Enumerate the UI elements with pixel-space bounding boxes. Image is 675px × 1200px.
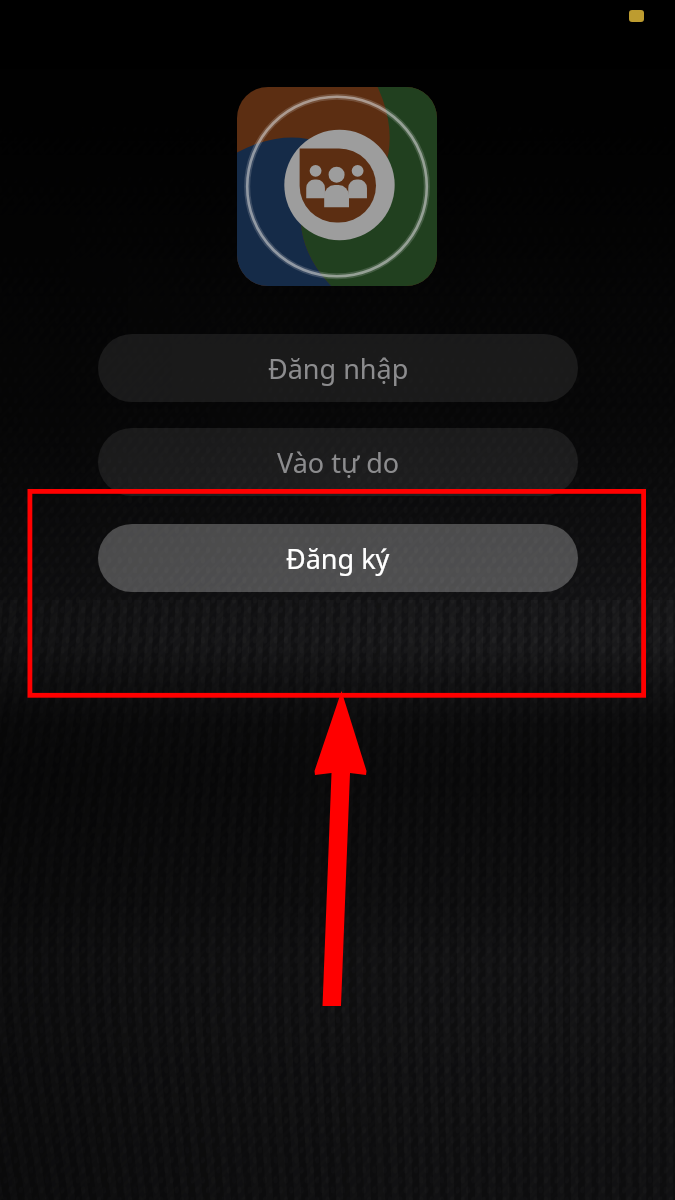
staticText: Vào tự do: [277, 444, 400, 481]
staticText: Đăng nhập: [268, 350, 409, 387]
button[interactable]: Đăng ký: [98, 524, 578, 592]
staticText: Đăng ký: [286, 540, 390, 577]
button[interactable]: Vào tự do: [98, 428, 578, 496]
button[interactable]: Đăng nhập: [98, 334, 578, 402]
other: App icon: [237, 87, 437, 286]
